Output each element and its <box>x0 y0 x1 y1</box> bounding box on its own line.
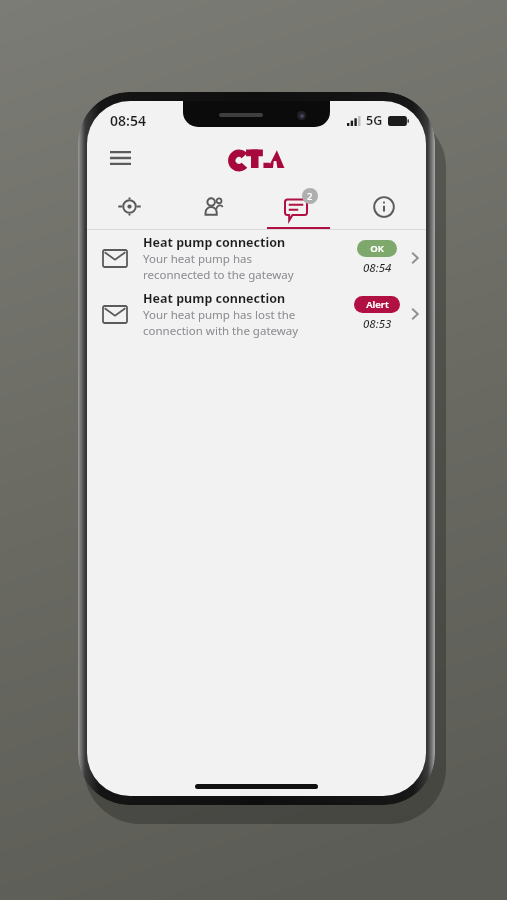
staticText: 08:54 <box>110 111 146 130</box>
staticText: 08:54 <box>363 260 392 276</box>
staticText: 08:53 <box>363 316 392 332</box>
staticText: reconnected to the gateway <box>143 267 294 283</box>
staticText: 2 <box>307 190 313 203</box>
button[interactable]: Heat pump connection <box>87 230 426 286</box>
button[interactable]: Heat pump connection <box>87 286 426 342</box>
staticText: Your heat pump has lost the <box>143 307 296 323</box>
staticText: Heat pump connection <box>143 234 286 251</box>
staticText: Your heat pump has <box>143 251 252 267</box>
button[interactable]: Devices <box>87 184 171 229</box>
button[interactable]: Messages <box>256 184 341 229</box>
button[interactable]: Contacts <box>171 184 256 229</box>
staticText: connection with the gateway <box>143 323 299 339</box>
staticText: Alert <box>366 298 389 311</box>
staticText: Heat pump connection <box>143 290 286 307</box>
staticText: OK <box>370 242 384 255</box>
button[interactable]: Info <box>341 184 426 229</box>
staticText: 5G <box>366 112 383 129</box>
button[interactable]: Menu <box>99 137 141 179</box>
